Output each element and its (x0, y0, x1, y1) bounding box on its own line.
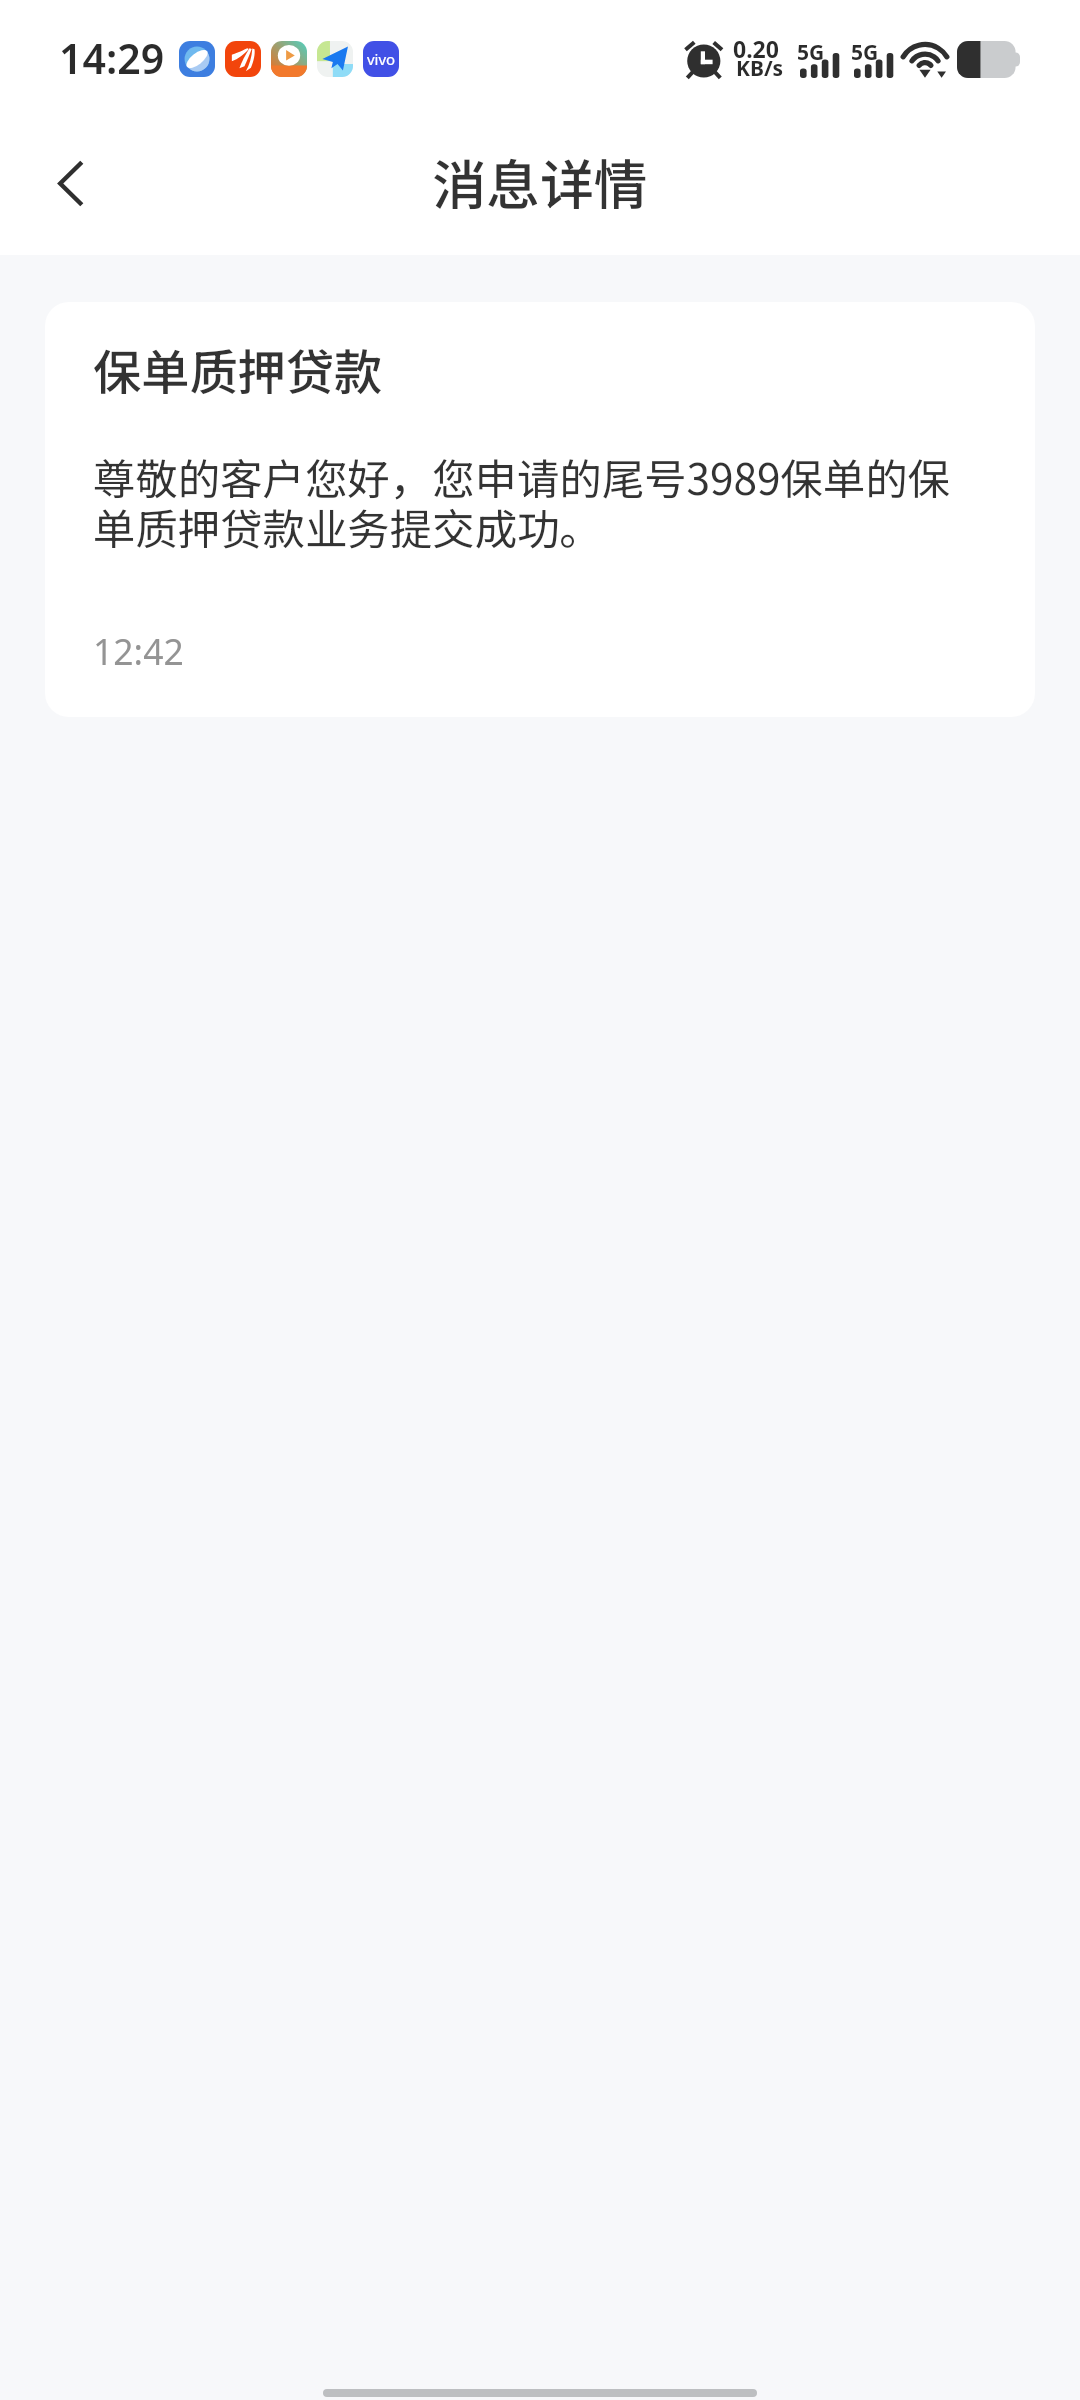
staticText: 消息详情 (432, 143, 648, 221)
staticText: KB/s (736, 54, 784, 83)
button[interactable]: Back (28, 130, 114, 236)
staticText: 14:29 (59, 30, 165, 86)
staticText: 尊敬的客户您好，您申请的尾号3989保单的保单质押贷款业务提交成功。 (93, 446, 991, 557)
staticText: 5G (851, 38, 879, 67)
staticText: 12:42 (93, 627, 184, 675)
staticText: 保单质押贷款 (93, 334, 383, 404)
staticText: 5G (797, 38, 825, 67)
staticText: 0.20 (733, 33, 779, 64)
button[interactable]: 保单质押贷款 (45, 302, 1035, 717)
staticText: vivo (367, 49, 396, 69)
